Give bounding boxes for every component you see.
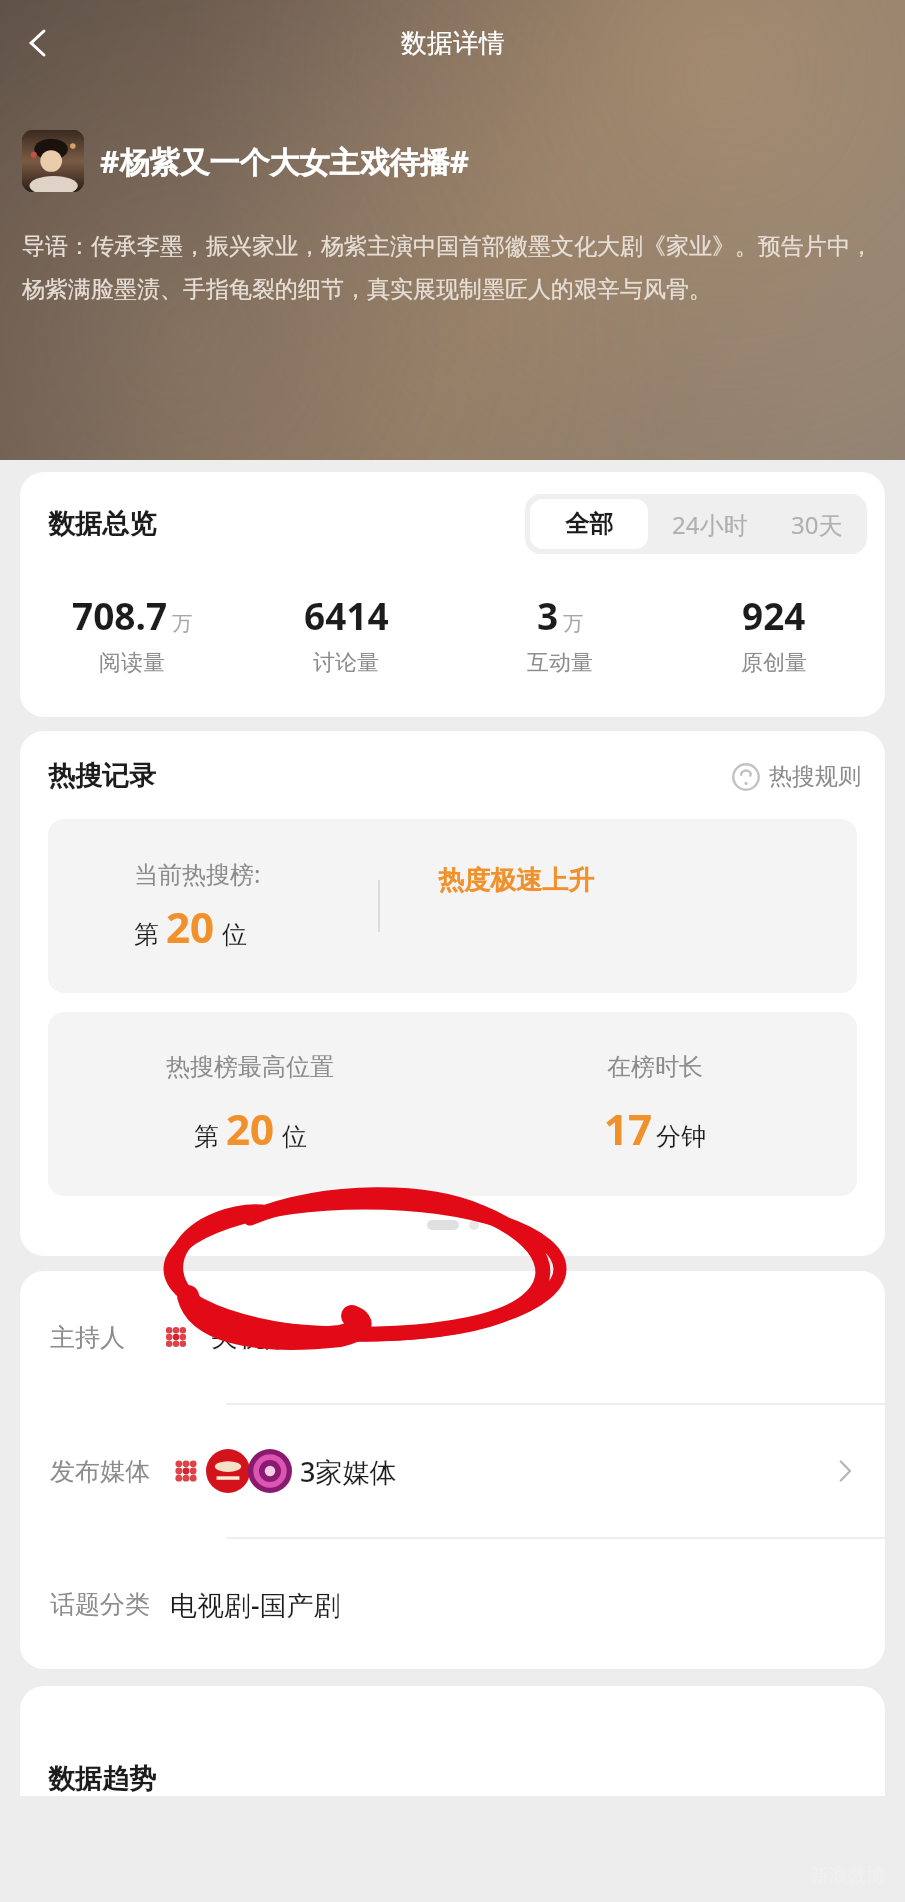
staticText: 数据总览 — [48, 507, 156, 541]
staticText: 发布媒体 — [50, 1456, 150, 1487]
staticText: 原创量 — [741, 649, 807, 677]
staticText: 导语：传承李墨，振兴家业，杨紫主演中国首部徽墨文化大剧《家业》。预告片中，杨紫满… — [22, 232, 885, 304]
staticText: #杨紫又一个大女主戏待播# — [100, 141, 469, 182]
staticText: 主持人 — [50, 1322, 125, 1353]
staticText: 讨论量 — [313, 649, 379, 677]
staticText: 央视频 — [211, 1320, 292, 1354]
staticText: 708.7 — [72, 590, 168, 640]
staticText: 热搜记录 — [48, 759, 156, 793]
button[interactable]: 发布媒体 — [20, 1405, 885, 1537]
staticText: 30天 — [791, 508, 843, 541]
staticText: 在榜时长 — [607, 1052, 703, 1082]
staticText: 万 — [563, 611, 583, 636]
staticText: 当前热搜榜: — [134, 857, 261, 890]
staticText: 电视剧-国产剧 — [170, 1586, 341, 1623]
staticText: 互动量 — [527, 649, 593, 677]
staticText: 24小时 — [672, 508, 748, 541]
button[interactable]: 924 — [667, 590, 881, 677]
staticText: 数据趋势 — [48, 1762, 156, 1796]
button[interactable]: Back — [8, 13, 68, 73]
button[interactable]: 708.7 — [24, 590, 239, 677]
button[interactable]: 3 — [453, 590, 667, 677]
button[interactable]: 全部 — [530, 499, 648, 549]
staticText: 阅读量 — [99, 649, 165, 677]
staticText: 第 — [134, 919, 159, 950]
staticText: 热度极速上升 — [438, 864, 594, 897]
button[interactable]: 24小时 — [653, 494, 767, 554]
staticText: 话题分类 — [50, 1589, 150, 1620]
staticText: 20 — [226, 1100, 275, 1157]
button[interactable]: 话题分类 — [20, 1539, 885, 1669]
staticText: 第 — [194, 1121, 219, 1152]
other: More media — [831, 1457, 859, 1485]
button[interactable]: 30天 — [767, 494, 867, 554]
staticText: 17 — [604, 1100, 653, 1157]
staticText: 热搜规则 — [769, 762, 861, 791]
staticText: 位 — [222, 919, 247, 950]
staticText: 6414 — [304, 590, 389, 640]
staticText: 热搜榜最高位置 — [166, 1052, 334, 1082]
staticText: 位 — [282, 1121, 307, 1152]
staticText: 万 — [172, 611, 192, 636]
button[interactable]: Topic image — [22, 130, 84, 192]
staticText: 数据详情 — [401, 27, 505, 60]
staticText: 3 — [537, 590, 559, 640]
staticText: 20 — [166, 898, 215, 955]
button[interactable]: 当前热搜榜: — [48, 819, 857, 993]
button[interactable]: 热搜榜最高位置 — [48, 1012, 857, 1196]
button[interactable]: 主持人 — [20, 1271, 885, 1403]
staticText: 924 — [742, 590, 806, 640]
button[interactable]: 6414 — [239, 590, 453, 677]
staticText: 3家媒体 — [300, 1453, 397, 1490]
staticText: 分钟 — [656, 1121, 706, 1152]
button[interactable]: 热搜规则 — [732, 762, 861, 791]
staticText: 全部 — [565, 509, 613, 539]
